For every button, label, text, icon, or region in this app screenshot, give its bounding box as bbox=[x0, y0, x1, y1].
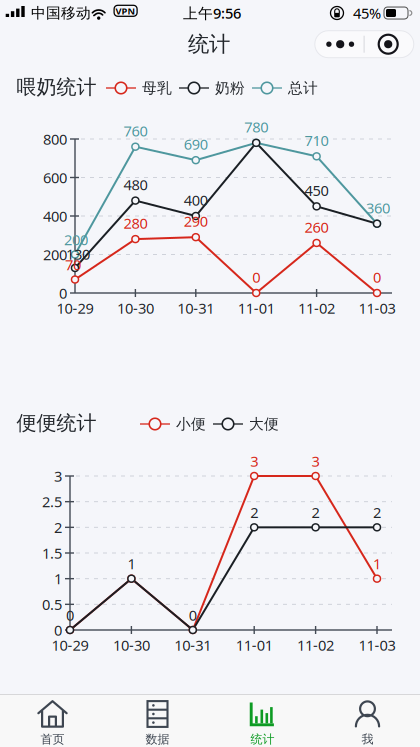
staticText: 统计 bbox=[250, 732, 274, 747]
staticText: 首页 bbox=[40, 732, 64, 747]
staticText: 1 bbox=[373, 554, 381, 573]
staticText: 10-31 bbox=[174, 635, 211, 655]
staticText: 0 bbox=[59, 283, 67, 303]
staticText: 奶粉 bbox=[215, 79, 245, 97]
staticText: 11-02 bbox=[298, 298, 335, 318]
staticText: VPN bbox=[116, 5, 136, 17]
staticText: 3 bbox=[250, 451, 258, 471]
staticText: 小便 bbox=[176, 415, 206, 433]
staticText: 11-03 bbox=[358, 298, 395, 318]
staticText: 2 bbox=[250, 503, 258, 522]
staticText: 0.5 bbox=[42, 595, 62, 614]
staticText: 10-31 bbox=[177, 298, 214, 318]
staticText: 200 bbox=[64, 230, 88, 249]
button[interactable]: 首页 bbox=[0, 694, 105, 747]
staticText: 0 bbox=[66, 605, 74, 625]
staticText: 1 bbox=[54, 569, 62, 588]
staticText: 11-03 bbox=[358, 635, 395, 655]
staticText: 统计 bbox=[188, 31, 230, 57]
staticText: 10-30 bbox=[117, 298, 154, 318]
staticText: 600 bbox=[43, 168, 67, 187]
staticText: 2.5 bbox=[42, 492, 62, 511]
button[interactable]: 数据 bbox=[105, 694, 210, 747]
staticText: 喂奶统计 bbox=[16, 75, 96, 99]
staticText: 便便统计 bbox=[16, 411, 96, 435]
staticText: 780 bbox=[244, 117, 268, 137]
staticText: 中国移动 bbox=[31, 4, 91, 22]
staticText: 上午9:56 bbox=[183, 3, 241, 23]
staticText: 760 bbox=[123, 121, 147, 140]
button[interactable]: More options bbox=[315, 31, 414, 58]
staticText: 800 bbox=[43, 129, 67, 149]
staticText: 480 bbox=[123, 175, 147, 194]
button[interactable]: 我 bbox=[315, 694, 420, 747]
staticText: 2 bbox=[373, 503, 381, 522]
staticText: 70 bbox=[65, 255, 81, 274]
staticText: 360 bbox=[366, 198, 390, 217]
staticText: 130 bbox=[66, 244, 90, 264]
staticText: 我 bbox=[361, 732, 373, 747]
staticText: 数据 bbox=[145, 732, 169, 747]
staticText: 260 bbox=[305, 217, 329, 237]
staticText: 0 bbox=[54, 620, 62, 640]
staticText: 400 bbox=[184, 190, 208, 210]
staticText: 3 bbox=[54, 466, 62, 486]
staticText: 0 bbox=[373, 267, 381, 287]
staticText: 10-30 bbox=[113, 635, 150, 655]
staticText: 450 bbox=[305, 181, 329, 200]
staticText: 11-02 bbox=[297, 635, 334, 655]
staticText: 3 bbox=[312, 451, 320, 471]
staticText: 1.5 bbox=[42, 543, 62, 563]
staticText: 290 bbox=[184, 211, 208, 231]
staticText: 2 bbox=[312, 503, 320, 522]
staticText: 11-01 bbox=[238, 298, 275, 318]
staticText: 1 bbox=[127, 554, 135, 573]
staticText: 10-29 bbox=[56, 298, 93, 318]
staticText: 0 bbox=[252, 267, 260, 287]
staticText: 总计 bbox=[288, 79, 318, 97]
staticText: 690 bbox=[184, 134, 208, 154]
staticText: 200 bbox=[43, 245, 67, 264]
button[interactable]: 统计 bbox=[210, 694, 315, 747]
staticText: 11-01 bbox=[236, 635, 273, 655]
staticText: 母乳 bbox=[142, 79, 172, 97]
staticText: 2 bbox=[54, 518, 62, 537]
staticText: 280 bbox=[123, 213, 147, 233]
staticText: 大便 bbox=[249, 415, 279, 433]
staticText: 45% bbox=[353, 3, 381, 23]
staticText: 710 bbox=[305, 131, 329, 150]
staticText: 0 bbox=[189, 605, 197, 625]
staticText: 10-29 bbox=[51, 635, 88, 655]
staticText: 400 bbox=[43, 206, 67, 226]
